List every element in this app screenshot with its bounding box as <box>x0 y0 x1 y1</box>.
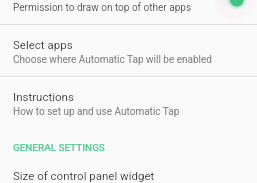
staticText: Select apps <box>13 38 73 51</box>
staticText: Permission to draw on top of other apps <box>13 2 192 14</box>
staticText: Choose where Automatic Tap will be enabl… <box>13 54 212 66</box>
button[interactable]: Permission to draw on top of other apps <box>0 0 257 24</box>
button[interactable]: Draw over other apps permission toggle <box>214 0 250 10</box>
staticText: How to set up and use Automatic Tap <box>13 106 180 118</box>
button[interactable]: Select apps <box>0 25 257 76</box>
button[interactable]: Size of control panel widget <box>0 164 257 183</box>
staticText: Instructions <box>13 90 74 103</box>
staticText: GENERAL SETTINGS <box>13 142 105 154</box>
button[interactable]: Instructions <box>0 77 257 128</box>
staticText: Size of control panel widget <box>13 169 155 182</box>
